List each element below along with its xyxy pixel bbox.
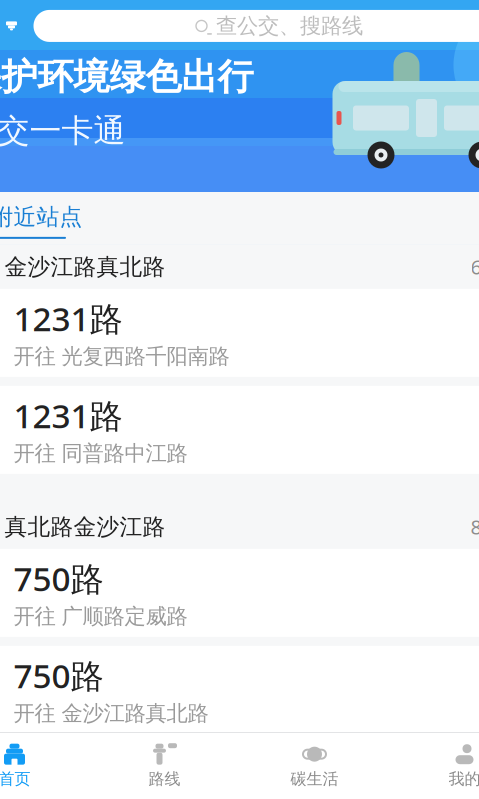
button[interactable]: 查公交、搜路线	[17, 10, 479, 42]
staticText: 750路	[13, 653, 103, 697]
staticText: 140m	[459, 774, 479, 799]
button[interactable]: 路线	[89, 735, 239, 797]
staticText: 开往 金沙江路真北路	[13, 700, 208, 727]
button[interactable]: 上海	[0, 5, 17, 47]
staticText: 路线	[148, 769, 180, 789]
staticText: 附近站点	[0, 203, 82, 231]
button[interactable]: 1231路	[0, 386, 479, 483]
staticText: 我的	[448, 769, 479, 789]
staticText: 开往 同普路中江路	[13, 440, 187, 467]
button[interactable]: 750路	[0, 549, 479, 646]
staticText: 保护环境绿色出行	[0, 55, 253, 99]
button[interactable]: 首页	[0, 735, 89, 797]
staticText: 首页	[0, 769, 30, 789]
staticText: 1231路	[13, 393, 122, 437]
button[interactable]: 附近站点	[0, 192, 82, 245]
staticText: 公交一卡通	[0, 111, 125, 150]
staticText: 碳生活	[290, 769, 338, 789]
button[interactable]: 我的	[389, 735, 479, 797]
staticText: 金沙江路中江路	[4, 773, 165, 799]
button[interactable]: 碳生活	[239, 735, 389, 797]
button[interactable]: 金沙江路中江路	[0, 765, 479, 799]
staticText: 开往 光复西路千阳南路	[13, 343, 229, 370]
staticText: 1231路	[13, 296, 122, 340]
button[interactable]: 真北路金沙江路	[0, 505, 479, 549]
staticText: 68m	[470, 254, 479, 280]
staticText: 金沙江路真北路	[4, 253, 165, 281]
staticText: 查公交、搜路线	[216, 13, 363, 39]
staticText: 82m	[470, 514, 479, 540]
staticText: 开往 广顺路定威路	[13, 603, 187, 630]
staticText: 真北路金沙江路	[4, 513, 165, 541]
button[interactable]: 750路	[0, 646, 479, 743]
staticText: 750路	[13, 556, 103, 600]
button[interactable]: 金沙江路真北路	[0, 245, 479, 289]
button[interactable]: 1231路	[0, 289, 479, 386]
